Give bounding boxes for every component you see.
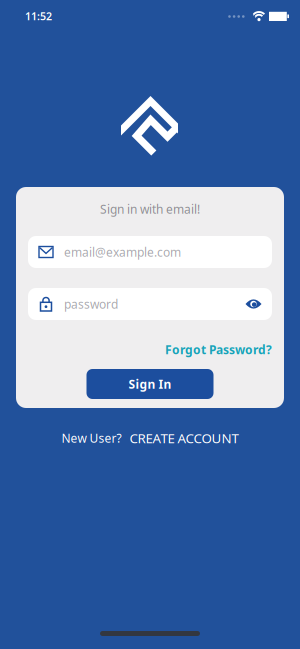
button[interactable]: CREATE ACCOUNT [129,429,238,447]
button[interactable]: Show password [245,297,262,311]
button[interactable]: Email [28,236,272,268]
staticText: Forgot Password? [165,341,272,357]
button[interactable]: Forgot Password? [165,341,272,357]
staticText: password [64,296,118,312]
button[interactable]: Password [28,288,272,320]
staticText: New User? [61,430,121,446]
staticText: 11:52 [25,9,52,23]
staticText: email@example.com [64,244,181,260]
staticText: Sign in with email! [100,201,200,217]
button[interactable]: Sign In [86,369,213,399]
staticText: Sign In [128,376,171,392]
staticText: CREATE ACCOUNT [129,429,238,447]
